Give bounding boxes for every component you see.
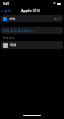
staticText: 사진 — [9, 17, 16, 21]
other: Open — [58, 17, 61, 20]
button[interactable]: 사진 — [1, 15, 63, 22]
staticText: 켬 — [54, 17, 57, 21]
staticText: 저장 공간 업그레이드 — [3, 29, 34, 33]
staticText: 설정 — [4, 9, 11, 13]
button[interactable]: 백업 — [1, 41, 63, 49]
staticText: 저장 공간 — [3, 36, 15, 40]
other: Back — [1, 10, 4, 13]
button[interactable]: 저장 공간 업그레이드 — [1, 27, 63, 34]
button[interactable]: Back — [1, 9, 11, 13]
staticText: 백업 — [10, 43, 17, 47]
staticText: Apple 계정 — [21, 8, 41, 13]
staticText: 9:41 — [3, 2, 10, 6]
